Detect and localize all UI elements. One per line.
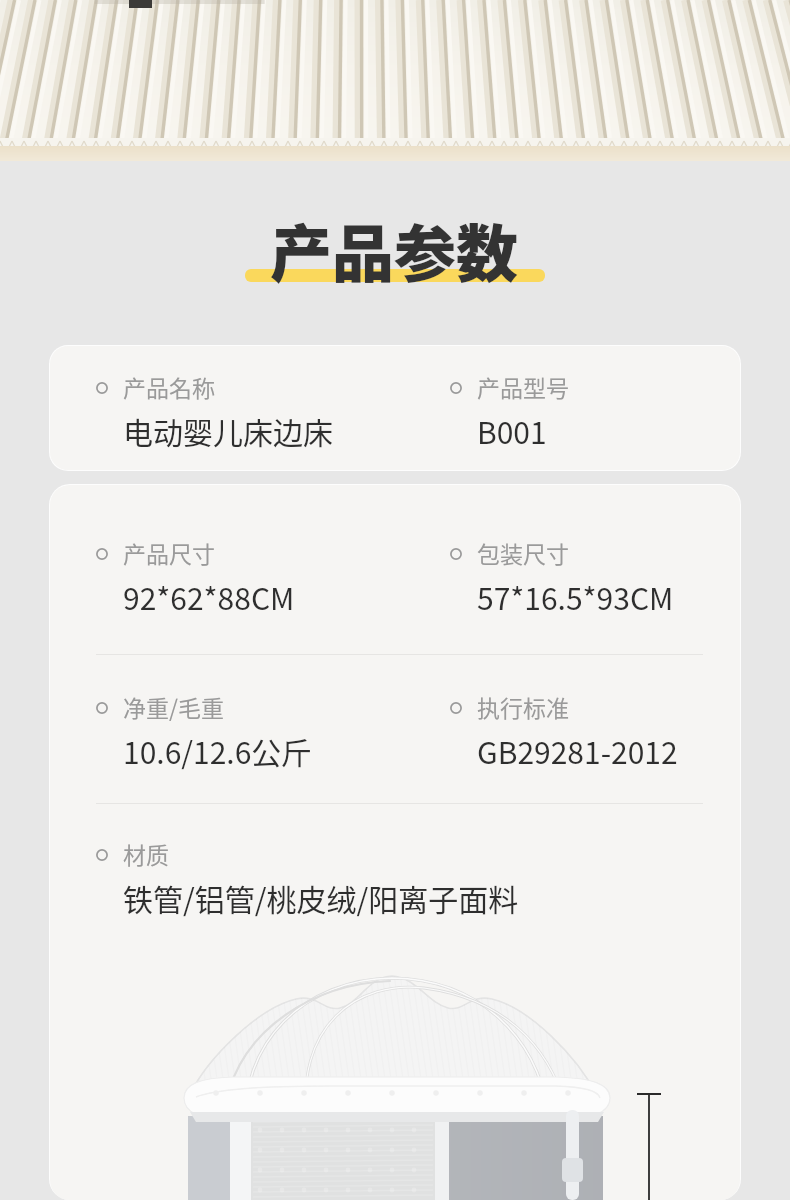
staticText: GB29281-2012 xyxy=(477,729,678,772)
staticText: 产品名称 xyxy=(123,370,215,403)
staticText: 执行标准 xyxy=(477,690,569,723)
staticText: 净重/毛重 xyxy=(123,690,225,723)
button[interactable]: 产品尺寸 xyxy=(96,528,426,618)
button[interactable]: 材质 xyxy=(96,829,716,919)
button[interactable]: 产品名称 xyxy=(96,362,426,452)
staticText: 材质 xyxy=(123,837,169,870)
staticText: 电动婴儿床边床 xyxy=(123,409,333,452)
button[interactable]: 净重/毛重 xyxy=(96,682,426,772)
staticText: 产品尺寸 xyxy=(123,536,215,569)
button[interactable]: 产品型号 xyxy=(450,362,740,452)
staticText: B001 xyxy=(477,409,547,452)
staticText: 92*62*88CM xyxy=(123,575,295,618)
staticText: 包装尺寸 xyxy=(477,536,569,569)
staticText: 57*16.5*93CM xyxy=(477,575,674,618)
button[interactable]: 包装尺寸 xyxy=(450,528,740,618)
button[interactable]: 执行标准 xyxy=(450,682,740,772)
staticText: 铁管/铝管/桃皮绒/阳离子面料 xyxy=(123,876,519,919)
staticText: 10.6/12.6公斤 xyxy=(123,729,312,772)
staticText: 产品参数 xyxy=(270,205,519,295)
staticText: 产品型号 xyxy=(477,370,569,403)
